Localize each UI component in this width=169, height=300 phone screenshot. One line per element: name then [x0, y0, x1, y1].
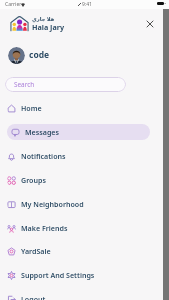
button[interactable]: Logout: [7, 291, 150, 300]
staticText: Carrier: [5, 1, 22, 8]
button[interactable]: Notifications: [7, 148, 150, 164]
staticText: Search: [14, 80, 35, 89]
staticText: 9:41: [82, 1, 92, 8]
staticText: Logout: [21, 294, 46, 300]
staticText: Notifications: [21, 151, 66, 161]
button[interactable]: Make Friends: [7, 220, 150, 236]
staticText: Make Friends: [21, 223, 68, 233]
staticText: Groups: [21, 175, 46, 185]
button[interactable]: Close drawer: [141, 15, 159, 33]
button[interactable]: YardSale: [7, 243, 150, 259]
staticText: Messages: [25, 127, 59, 137]
button[interactable]: Groups: [7, 172, 150, 188]
staticText: code: [29, 49, 50, 61]
staticText: Home: [21, 103, 42, 113]
button[interactable]: Messages: [7, 124, 150, 140]
staticText: Support And Settings: [21, 270, 95, 280]
button[interactable]: My Neighborhood: [7, 196, 150, 212]
button[interactable]: Home: [7, 100, 150, 116]
button[interactable]: Search: [5, 77, 126, 92]
button[interactable]: code: [0, 46, 163, 64]
staticText: My Neighborhood: [21, 199, 84, 209]
staticText: YardSale: [21, 246, 51, 256]
staticText: هلا جاري: [32, 15, 55, 22]
button[interactable]: Support And Settings: [7, 267, 150, 283]
staticText: Hala Jary: [32, 22, 65, 32]
